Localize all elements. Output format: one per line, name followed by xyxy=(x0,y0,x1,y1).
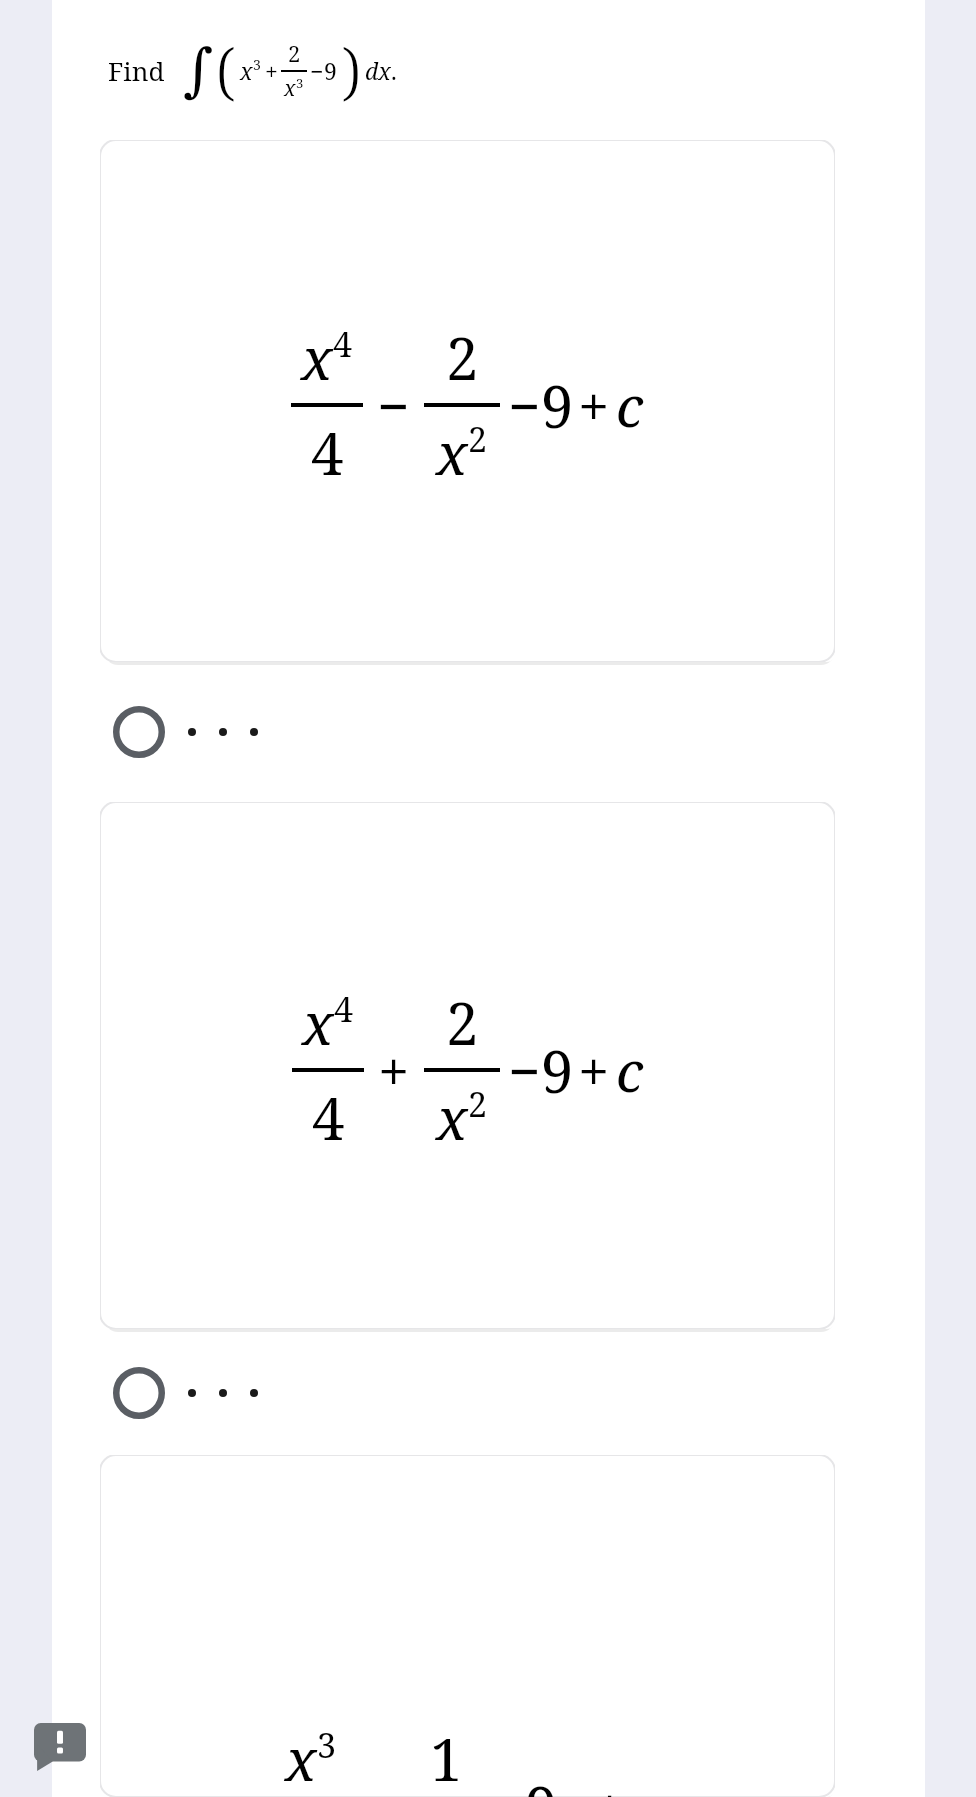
staticText: 9 xyxy=(541,366,574,445)
staticText: + xyxy=(578,1032,610,1108)
staticText: 1 xyxy=(430,1719,463,1797)
staticText: ∫ xyxy=(183,36,214,104)
button[interactable]: x xyxy=(100,802,835,1329)
staticText: 4 xyxy=(333,321,353,367)
button[interactable]: x xyxy=(100,1455,835,1797)
staticText: c xyxy=(616,367,644,443)
staticText: − xyxy=(377,367,410,443)
staticText: Find xyxy=(108,53,165,88)
staticText: x xyxy=(301,318,333,397)
button[interactable]: Send feedback xyxy=(34,1723,86,1771)
staticText: 4 xyxy=(334,986,354,1032)
staticText: 9 xyxy=(324,55,337,86)
staticText: − xyxy=(508,367,541,443)
staticText: + xyxy=(578,367,610,443)
staticText: 3 xyxy=(296,74,304,92)
staticText: c xyxy=(632,1768,660,1797)
staticText: x xyxy=(240,55,253,86)
staticText: x xyxy=(285,1719,317,1797)
staticText: 9 xyxy=(525,1767,558,1797)
staticText: 2 xyxy=(446,983,479,1062)
staticText: − xyxy=(508,1032,541,1108)
staticText: ) xyxy=(341,28,361,112)
staticText: 4 xyxy=(312,1078,345,1157)
staticText: c xyxy=(616,1032,644,1108)
staticText: + xyxy=(378,1032,410,1108)
other: Select this answer xyxy=(112,705,166,759)
staticText: x xyxy=(284,74,296,103)
staticText: x xyxy=(436,1078,468,1157)
staticText: 3 xyxy=(317,1722,337,1768)
staticText: dx xyxy=(365,55,391,86)
staticText: 2 xyxy=(468,1081,488,1127)
staticText: x xyxy=(302,983,334,1062)
staticText: + xyxy=(265,55,278,86)
staticText: 2 xyxy=(288,38,301,68)
staticText: 3 xyxy=(253,55,261,74)
staticText: − xyxy=(492,1768,525,1797)
staticText: − xyxy=(310,55,324,86)
staticText: x xyxy=(436,413,468,492)
other: Select this answer xyxy=(112,1366,166,1420)
staticText: 9 xyxy=(541,1031,574,1110)
staticText: 4 xyxy=(311,413,344,492)
button[interactable]: x xyxy=(100,140,835,662)
staticText: ( xyxy=(216,28,236,112)
staticText: 2 xyxy=(446,318,479,397)
staticText: − xyxy=(361,1768,394,1797)
staticText: + xyxy=(594,1768,626,1797)
staticText: 2 xyxy=(468,416,488,462)
staticText: x xyxy=(558,1767,590,1797)
staticText: . xyxy=(391,55,397,86)
button[interactable]: Select this answer xyxy=(112,1361,925,1425)
button[interactable]: Select this answer xyxy=(112,700,925,764)
